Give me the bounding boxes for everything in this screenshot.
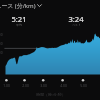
staticText: ベスト (72, 23, 81, 27)
other: Change metric (37, 3, 42, 8)
staticText: 3.00 (40, 83, 47, 88)
staticText: 4:00 (0, 32, 3, 37)
staticText: 3:24 (68, 14, 84, 24)
staticText: 6:00 (0, 50, 3, 55)
staticText: 5.00 (80, 83, 87, 88)
staticText: 4.00 (60, 83, 67, 88)
staticText: ペース (分/km) (0, 2, 36, 10)
staticText: 平均 (16, 23, 22, 27)
staticText: 1.00 (3, 83, 10, 88)
staticText: 5:00 (0, 41, 3, 46)
staticText: 5:21 (11, 14, 27, 24)
staticText: 時間（時:分:秒） (36, 92, 66, 97)
staticText: 2.00 (22, 83, 29, 88)
button[interactable]: ペース (分/km) (0, 0, 46, 11)
